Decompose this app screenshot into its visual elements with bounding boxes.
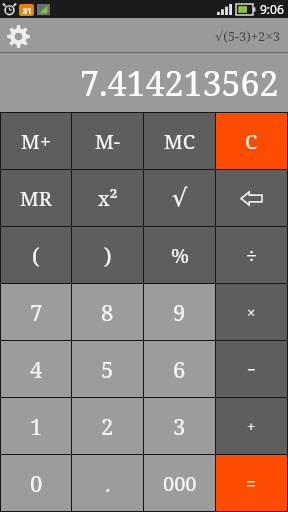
button[interactable]: Settings [3, 21, 33, 51]
button[interactable]: × [216, 284, 287, 340]
staticText: 5 [101, 354, 114, 384]
staticText: 9 [173, 297, 186, 327]
button[interactable]: M- [72, 113, 143, 169]
button[interactable]: 0 [1, 455, 71, 511]
button[interactable]: C [216, 113, 287, 169]
staticText: √(5-3)+2×3 [215, 27, 280, 45]
button[interactable]: 2 [72, 398, 143, 454]
button[interactable]: − [216, 341, 287, 397]
button[interactable]: √ [144, 170, 215, 226]
staticText: 000 [163, 470, 197, 497]
staticText: 8 [101, 297, 114, 327]
button[interactable]: ) [72, 227, 143, 283]
button[interactable]: MR [1, 170, 71, 226]
staticText: % [171, 242, 189, 269]
staticText: MC [164, 128, 196, 155]
button[interactable]: 1 [1, 398, 71, 454]
button[interactable]: = [216, 455, 287, 511]
button[interactable]: % [144, 227, 215, 283]
button[interactable]: ÷ [216, 227, 287, 283]
button[interactable]: 3 [144, 398, 215, 454]
staticText: 6 [173, 354, 186, 384]
staticText: ( [32, 240, 40, 270]
button[interactable]: MC [144, 113, 215, 169]
staticText: MR [20, 185, 52, 212]
staticText: ) [104, 240, 112, 270]
staticText: 1 [30, 411, 43, 441]
button[interactable]: 5 [72, 341, 143, 397]
button[interactable]: 8 [72, 284, 143, 340]
staticText: x² [98, 185, 118, 212]
staticText: M- [95, 128, 120, 155]
staticText: + [247, 416, 256, 436]
staticText: × [247, 302, 256, 322]
staticText: 2 [101, 411, 114, 441]
staticText: 4 [30, 354, 43, 384]
staticText: 9:06 [260, 1, 284, 17]
staticText: 7.414213562 [80, 60, 279, 106]
staticText: 3 [173, 411, 186, 441]
button[interactable]: . [72, 455, 143, 511]
staticText: − [247, 359, 256, 379]
button[interactable]: 9 [144, 284, 215, 340]
staticText: ÷ [246, 242, 258, 269]
button[interactable]: 6 [144, 341, 215, 397]
button[interactable]: 000 [144, 455, 215, 511]
staticText: 7 [30, 297, 43, 327]
button[interactable]: x² [72, 170, 143, 226]
button[interactable]: Backspace [216, 170, 287, 226]
button[interactable]: + [216, 398, 287, 454]
staticText: . [105, 468, 111, 498]
button[interactable]: 4 [1, 341, 71, 397]
button[interactable]: M+ [1, 113, 71, 169]
staticText: 0 [30, 468, 43, 498]
button[interactable]: 7 [1, 284, 71, 340]
button[interactable]: ( [1, 227, 71, 283]
staticText: √ [172, 184, 188, 212]
staticText: M+ [21, 128, 51, 155]
staticText: C [245, 128, 258, 155]
staticText: 31 [22, 5, 32, 16]
staticText: = [246, 471, 257, 496]
